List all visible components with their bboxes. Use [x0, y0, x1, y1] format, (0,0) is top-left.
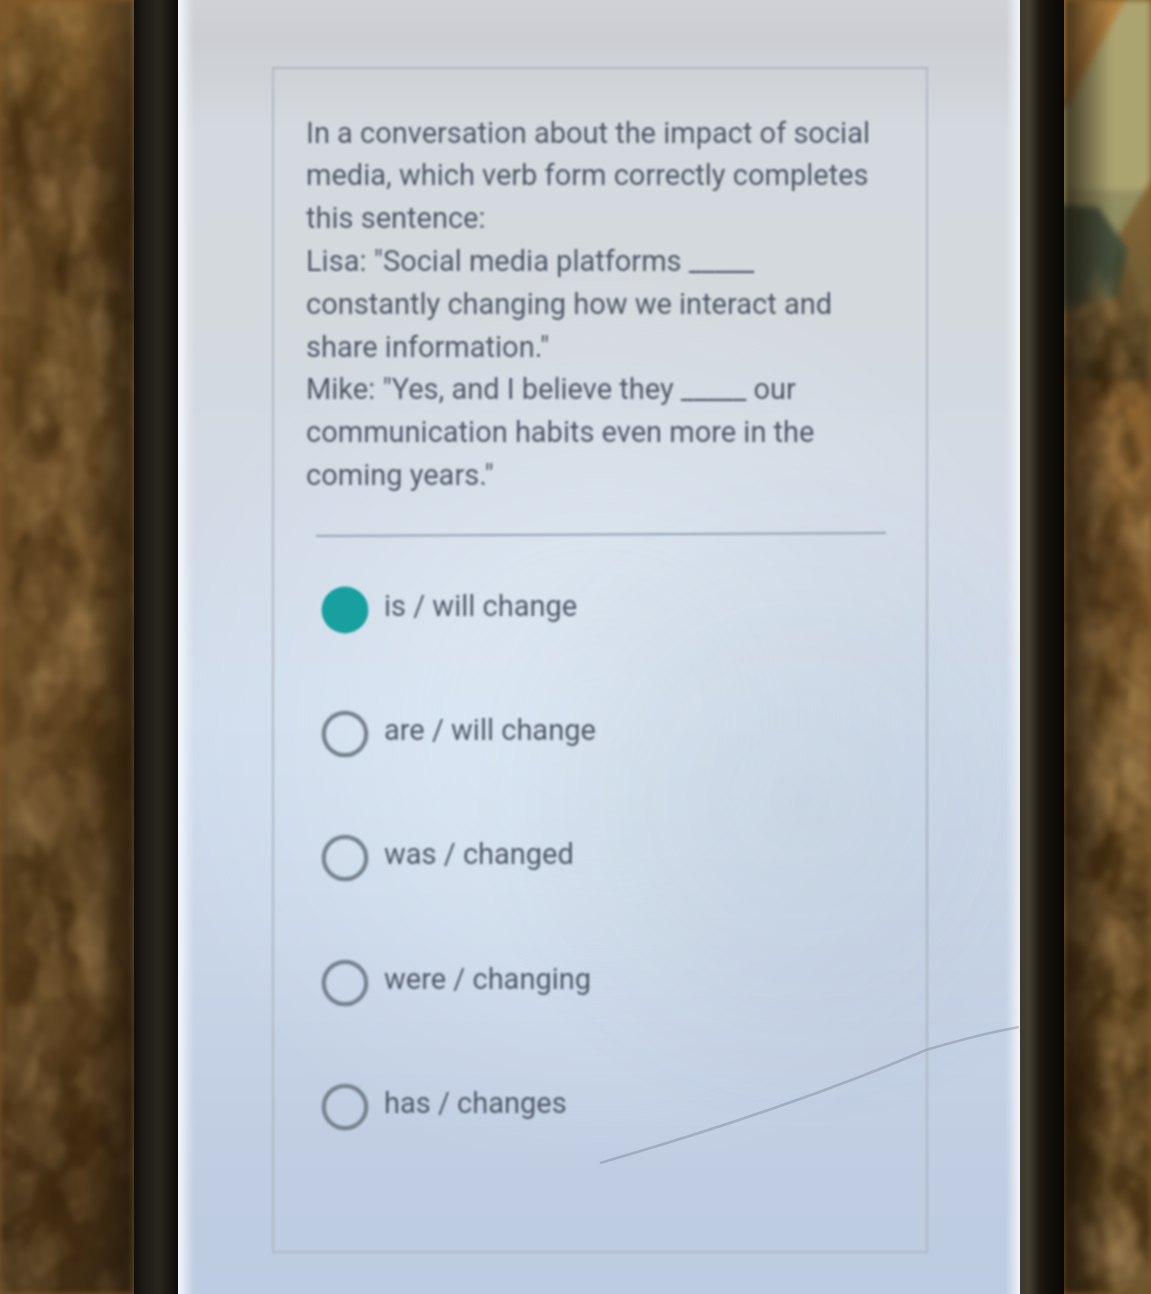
staticText: this sentence:: [306, 201, 486, 235]
staticText: share information.": [306, 330, 550, 364]
staticText: media, which verb form correctly complet…: [306, 158, 869, 192]
staticText: Mike: "Yes, and I believe they _____ our: [306, 372, 796, 406]
staticText: is / will change: [384, 589, 578, 623]
staticText: coming years.": [306, 458, 494, 492]
button[interactable]: were / changing: [288, 921, 888, 1045]
button[interactable]: was / changed: [288, 796, 888, 920]
staticText: was / changed: [384, 837, 574, 871]
staticText: In a conversation about the impact of so…: [306, 116, 870, 150]
staticText: has / changes: [384, 1086, 567, 1120]
button[interactable]: has / changes: [288, 1045, 888, 1169]
staticText: are / will change: [384, 713, 596, 747]
button[interactable]: is / will change: [288, 548, 888, 672]
staticText: communication habits even more in the: [306, 415, 815, 449]
staticText: constantly changing how we interact and: [306, 287, 833, 321]
button[interactable]: are / will change: [288, 672, 888, 796]
staticText: Lisa: "Social media platforms _____: [306, 244, 755, 278]
staticText: were / changing: [384, 962, 592, 996]
